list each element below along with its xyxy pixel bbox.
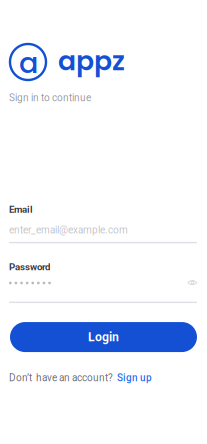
button[interactable]: Email [0, 204, 207, 243]
staticText: Email [9, 204, 33, 215]
button[interactable]: Login [10, 322, 197, 352]
staticText: Login [88, 330, 119, 344]
staticText: Password [9, 261, 50, 273]
staticText: Sign up [117, 372, 152, 384]
staticText: enter_email@example.com [9, 224, 128, 236]
button[interactable]: Show password [186, 283, 197, 289]
staticText: Don’t have an account? [9, 372, 113, 384]
staticText: Sign in to continue [9, 92, 91, 104]
staticText: appz [58, 42, 125, 80]
button[interactable]: Sign up [117, 372, 152, 384]
staticText: a [19, 43, 38, 83]
